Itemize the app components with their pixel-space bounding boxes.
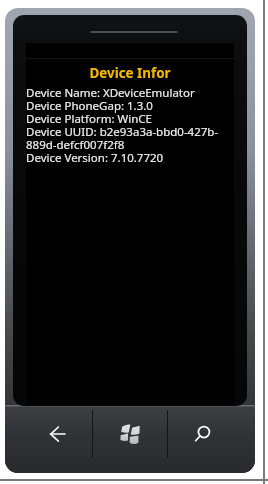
staticText: Device Infor bbox=[26, 64, 234, 82]
button[interactable]: Start bbox=[93, 407, 167, 461]
button[interactable]: Search bbox=[169, 407, 235, 461]
staticText: Device Name: XDeviceEmulator Device Phon… bbox=[26, 85, 219, 166]
button[interactable]: Back bbox=[24, 407, 90, 461]
